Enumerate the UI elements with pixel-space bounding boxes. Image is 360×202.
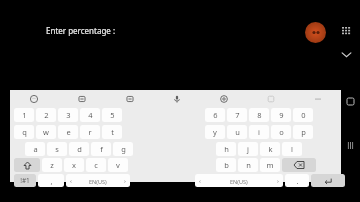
- staticText: 8: [257, 110, 262, 120]
- staticText: .: [296, 176, 299, 186]
- staticText: a: [33, 144, 38, 154]
- button[interactable]: Space: [66, 174, 130, 187]
- staticText: 3: [66, 110, 71, 120]
- button[interactable]: 5: [102, 108, 122, 122]
- button[interactable]: 7: [227, 108, 247, 122]
- button[interactable]: n: [238, 158, 258, 172]
- staticText: j: [247, 144, 249, 154]
- button[interactable]: u: [227, 125, 247, 139]
- staticText: m: [266, 160, 274, 170]
- button[interactable]: r: [80, 125, 100, 139]
- staticText: l: [291, 144, 293, 154]
- button[interactable]: Voice input: [153, 90, 200, 107]
- staticText: Enter percentage :: [46, 25, 116, 36]
- button[interactable]: 2: [36, 108, 56, 122]
- staticText: d: [77, 144, 82, 154]
- staticText: y: [213, 127, 217, 137]
- button[interactable]: [311, 174, 345, 187]
- button[interactable]: 6: [205, 108, 225, 122]
- staticText: z: [50, 160, 54, 170]
- button[interactable]: [14, 158, 40, 172]
- button[interactable]: m: [260, 158, 280, 172]
- button[interactable]: 3: [58, 108, 78, 122]
- staticText: 1: [22, 110, 27, 120]
- button[interactable]: v: [108, 158, 128, 172]
- staticText: ‹: [70, 177, 72, 185]
- button[interactable]: b: [216, 158, 236, 172]
- staticText: 7: [235, 110, 240, 120]
- staticText: ›: [124, 177, 126, 185]
- button[interactable]: d: [69, 142, 89, 156]
- staticText: 5: [110, 110, 115, 120]
- button[interactable]: .: [285, 174, 309, 187]
- staticText: 4: [88, 110, 93, 120]
- staticText: 9: [279, 110, 284, 120]
- button[interactable]: GIF: [106, 90, 153, 107]
- staticText: i: [258, 127, 260, 137]
- staticText: c: [94, 160, 98, 170]
- button[interactable]: p: [293, 125, 313, 139]
- button[interactable]: c: [86, 158, 106, 172]
- staticText: v: [116, 160, 120, 170]
- button[interactable]: z: [42, 158, 62, 172]
- button[interactable]: 4: [80, 108, 100, 122]
- button[interactable]: k: [260, 142, 280, 156]
- button[interactable]: Menu: [338, 23, 354, 39]
- button[interactable]: f: [91, 142, 111, 156]
- staticText: b: [224, 160, 229, 170]
- button[interactable]: s: [47, 142, 67, 156]
- button[interactable]: 0: [293, 108, 313, 122]
- button[interactable]: ,: [38, 174, 64, 187]
- button[interactable]: j: [238, 142, 258, 156]
- button[interactable]: 1: [14, 108, 34, 122]
- button[interactable]: e: [58, 125, 78, 139]
- staticText: e: [66, 127, 71, 137]
- button[interactable]: l: [282, 142, 302, 156]
- staticText: ›: [277, 177, 279, 185]
- staticText: ‹: [199, 177, 201, 185]
- button[interactable]: i: [249, 125, 269, 139]
- staticText: q: [22, 127, 27, 137]
- staticText: g: [121, 144, 126, 154]
- button[interactable]: 9: [271, 108, 291, 122]
- button[interactable]: y: [205, 125, 225, 139]
- button[interactable]: Collapse: [337, 45, 355, 63]
- staticText: s: [55, 144, 59, 154]
- staticText: k: [268, 144, 273, 154]
- button[interactable]: Recents: [345, 140, 355, 150]
- staticText: r: [88, 127, 92, 137]
- button[interactable]: [282, 158, 316, 172]
- staticText: p: [301, 127, 306, 137]
- staticText: 2: [44, 110, 49, 120]
- staticText: EN(US): [230, 178, 248, 185]
- button[interactable]: o: [271, 125, 291, 139]
- staticText: ,: [50, 176, 53, 186]
- button[interactable]: x: [64, 158, 84, 172]
- staticText: t: [111, 127, 114, 137]
- staticText: x: [72, 160, 76, 170]
- button[interactable]: h: [216, 142, 236, 156]
- button[interactable]: Home: [345, 96, 355, 106]
- staticText: n: [246, 160, 251, 170]
- staticText: 0: [301, 110, 306, 120]
- button[interactable]: Settings: [200, 90, 247, 107]
- staticText: !#1: [20, 176, 30, 185]
- button[interactable]: More options: [294, 90, 341, 107]
- button[interactable]: w: [36, 125, 56, 139]
- button[interactable]: Space: [195, 174, 283, 187]
- button[interactable]: t: [102, 125, 122, 139]
- button[interactable]: !#1: [14, 174, 36, 187]
- button[interactable]: Sticker: [58, 90, 106, 107]
- staticText: EN(US): [89, 178, 107, 185]
- button[interactable]: a: [25, 142, 45, 156]
- button[interactable]: g: [113, 142, 133, 156]
- button[interactable]: Translate: [247, 90, 294, 107]
- staticText: 6: [213, 110, 218, 120]
- staticText: u: [235, 127, 240, 137]
- button[interactable]: 8: [249, 108, 269, 122]
- staticText: o: [279, 127, 284, 137]
- staticText: w: [43, 127, 49, 137]
- button[interactable]: Account: [305, 22, 326, 43]
- button[interactable]: q: [14, 125, 34, 139]
- button[interactable]: Emoji: [10, 90, 58, 107]
